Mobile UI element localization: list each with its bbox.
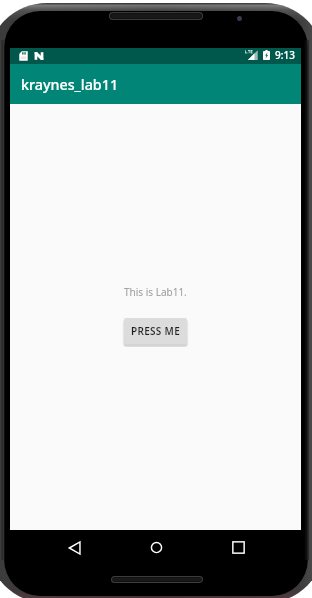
staticText: 9:13	[275, 48, 295, 62]
button[interactable]: PRESS ME	[124, 318, 187, 344]
staticText: This is Lab11.	[124, 285, 187, 299]
button[interactable]: Home	[133, 530, 179, 565]
button[interactable]: Back	[51, 530, 97, 565]
staticText: kraynes_lab11	[21, 75, 119, 94]
button[interactable]: Recent apps	[215, 530, 261, 565]
staticText: PRESS ME	[131, 324, 181, 338]
